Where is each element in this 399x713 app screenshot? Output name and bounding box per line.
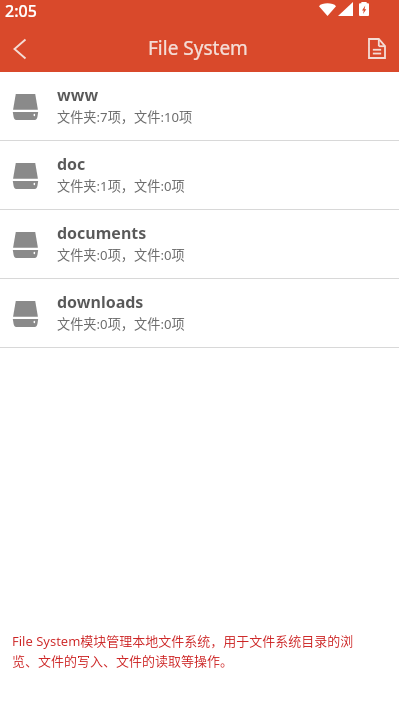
- button[interactable]: Back: [0, 26, 45, 71]
- staticText: 2:05: [5, 0, 37, 22]
- staticText: File System模块管理本地文件系统，用于文件系统目录的浏 览、文件的写入…: [12, 631, 387, 669]
- button[interactable]: downloads: [0, 279, 399, 347]
- button[interactable]: doc: [0, 141, 399, 209]
- staticText: 文件夹:1项，文件:0项: [57, 176, 185, 195]
- staticText: www: [57, 84, 99, 106]
- staticText: documents: [57, 222, 147, 244]
- staticText: downloads: [57, 291, 144, 313]
- staticText: doc: [57, 153, 86, 175]
- staticText: 文件夹:7项，文件:10项: [57, 107, 193, 126]
- staticText: 文件夹:0项，文件:0项: [57, 314, 185, 333]
- staticText: 文件夹:0项，文件:0项: [57, 245, 185, 264]
- button[interactable]: documents: [0, 210, 399, 278]
- button[interactable]: New file: [354, 26, 399, 71]
- button[interactable]: www: [0, 72, 399, 140]
- staticText: File System: [148, 35, 248, 61]
